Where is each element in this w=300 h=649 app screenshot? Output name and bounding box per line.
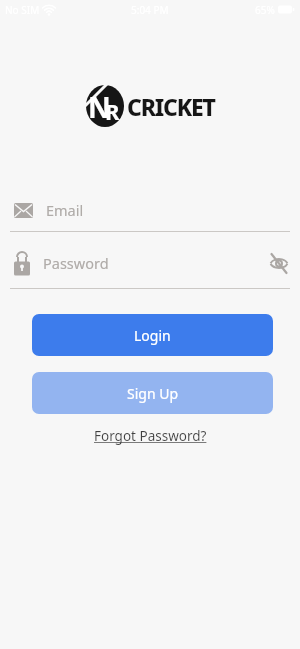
staticText: CRICKET xyxy=(127,91,215,122)
staticText: Password xyxy=(43,253,109,273)
staticText: No SIM xyxy=(5,3,40,16)
staticText: Sign Up xyxy=(127,384,179,403)
staticText: R xyxy=(105,96,120,126)
button[interactable]: Forgot Password? xyxy=(94,427,207,445)
button[interactable]: Sign Up xyxy=(32,372,273,414)
button[interactable] xyxy=(268,251,290,275)
staticText: Email xyxy=(46,200,84,220)
button[interactable]: Login xyxy=(32,314,273,356)
staticText: Login xyxy=(134,326,171,345)
staticText: N xyxy=(88,88,111,126)
